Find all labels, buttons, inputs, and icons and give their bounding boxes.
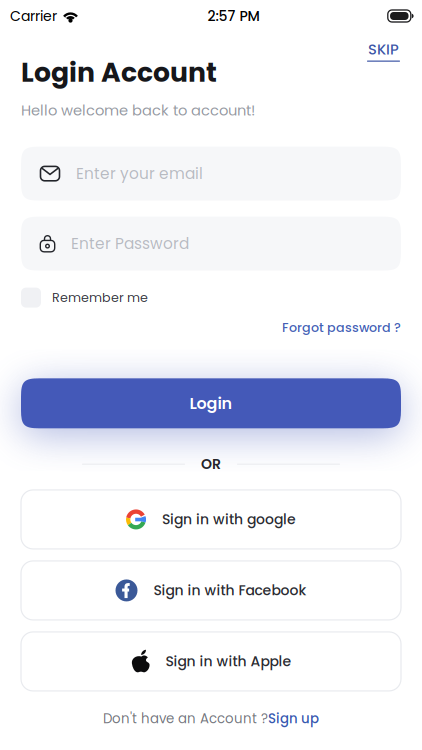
staticText: Don't have an Account ? <box>103 709 268 728</box>
staticText: 2:57 PM <box>207 6 259 26</box>
button[interactable]: Forgot password ? <box>282 319 401 336</box>
button[interactable]: SKIP <box>367 39 400 62</box>
button[interactable]: Remember me <box>0 285 422 311</box>
button[interactable]: Sign in with google <box>21 490 401 549</box>
button[interactable]: Sign in with Facebook <box>21 561 401 620</box>
staticText: Hello welcome back to account! <box>21 100 255 121</box>
staticText: Sign in with google <box>162 510 296 529</box>
staticText: Carrier <box>10 6 57 26</box>
button[interactable]: Sign in with Apple <box>21 632 401 691</box>
staticText: SKIP <box>368 39 399 59</box>
staticText: Login <box>189 392 232 414</box>
staticText: Enter Password <box>71 233 189 254</box>
staticText: Remember me <box>52 289 148 306</box>
staticText: Sign in with Apple <box>165 652 291 671</box>
staticText: Login Account <box>21 54 217 91</box>
staticText: Sign in with Facebook <box>153 581 306 600</box>
staticText: Enter your email <box>76 163 203 184</box>
staticText: Forgot password ? <box>282 319 401 336</box>
staticText: Sign up <box>268 709 319 728</box>
button[interactable]: Sign up <box>268 709 319 728</box>
button[interactable]: Login <box>21 378 401 428</box>
staticText: OR <box>201 454 221 474</box>
